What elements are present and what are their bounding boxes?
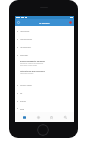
button[interactable]: Chronic Kidney: [15, 81, 74, 89]
staticText: Nephrology practice: [20, 73, 34, 75]
staticText: International IgM Prevalence: [20, 70, 45, 72]
button[interactable]: Dialysis: [15, 97, 74, 105]
button[interactable]: International IgM Prevalence: [15, 69, 74, 81]
button[interactable]: Neurosurgery: [15, 43, 74, 51]
button[interactable]: Nephrology: [15, 27, 74, 35]
staticText: Anesthesiology: [20, 38, 33, 40]
staticText: eGFR: [20, 108, 25, 110]
button[interactable]: eGFR: [15, 105, 74, 112]
button[interactable]: Feed: [19, 112, 29, 122]
button[interactable]: Favorites: [46, 112, 56, 122]
button[interactable]: Glomerulonephritis on Biopsy: [15, 59, 74, 69]
button[interactable]: Notifications: [68, 20, 73, 25]
button[interactable]: Recent: [33, 112, 43, 122]
staticText: Nephrology: [20, 30, 30, 32]
staticText: Glomerulonephritis on Biopsy: [20, 60, 46, 62]
button[interactable]: Anesthesiology: [15, 35, 74, 43]
staticText: PD: [20, 92, 23, 94]
button[interactable]: PD: [15, 89, 74, 97]
staticText: Dialysis: [20, 100, 26, 102]
button[interactable]: Menu: [16, 20, 21, 25]
staticText: Study after the app usage: [20, 65, 37, 67]
staticText: Neurosurgery: [20, 46, 32, 48]
staticText: Pathology: [20, 54, 28, 56]
staticText: My Speciality: [39, 22, 50, 24]
staticText: Glomerular nephritis and diagnosis: [20, 63, 44, 65]
staticText: Chronic Kidney: [20, 84, 32, 86]
button[interactable]: Search: [60, 112, 70, 122]
button[interactable]: Home: [37, 124, 49, 136]
button[interactable]: Pathology: [15, 51, 74, 59]
